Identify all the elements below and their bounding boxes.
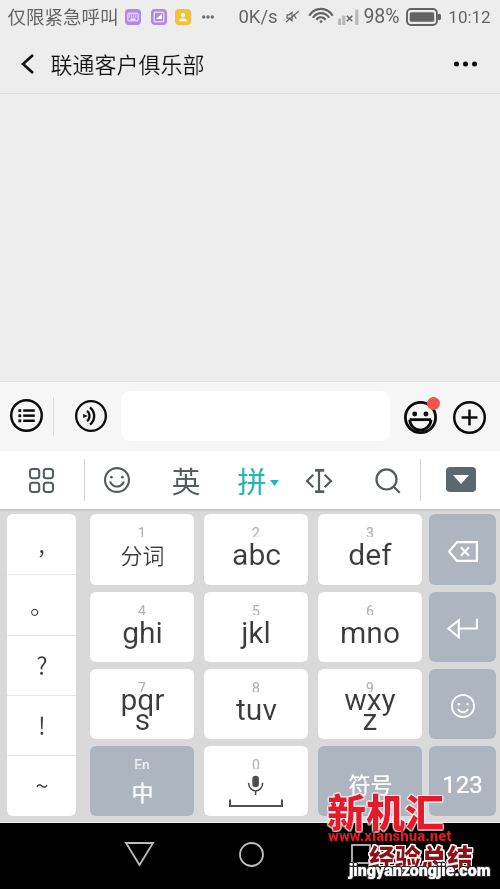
staticText: 拼 <box>237 459 267 501</box>
button[interactable]: 8 <box>204 669 308 739</box>
button[interactable]: En <box>90 746 194 816</box>
staticText: jingyanzongjie.com <box>350 860 492 879</box>
button[interactable]: Emoji <box>429 669 496 739</box>
staticText: jingyanzongjie.com <box>350 862 492 881</box>
staticText: wxy z <box>344 682 396 737</box>
staticText: 经验总结 <box>368 837 473 875</box>
button[interactable]: More options <box>430 33 500 94</box>
button[interactable]: Emoji <box>404 401 437 434</box>
button[interactable]: 2 <box>204 514 308 585</box>
button[interactable]: 0 <box>204 746 308 816</box>
staticText: En <box>134 757 150 769</box>
button[interactable]: 7 <box>90 669 194 739</box>
button[interactable]: , <box>7 514 76 575</box>
button[interactable]: Back <box>6 33 50 94</box>
staticText: , <box>38 525 45 560</box>
button[interactable]: 6 <box>318 592 422 662</box>
button[interactable]: 3 <box>318 514 422 585</box>
staticText: 仅限紧急呼叫 <box>7 3 119 30</box>
staticText: jingyanzongjie.com <box>350 861 492 880</box>
button[interactable]: Home <box>216 823 286 885</box>
staticText: 5 <box>252 603 260 615</box>
button[interactable]: 符号 <box>318 746 422 816</box>
button[interactable]: ! <box>7 696 76 756</box>
button[interactable]: Keyboard layouts <box>29 468 54 493</box>
staticText: 4 <box>138 603 146 615</box>
staticText: tuv <box>236 692 277 727</box>
button[interactable]: 拼 <box>237 451 279 509</box>
button[interactable]: Voice <box>75 400 107 432</box>
button[interactable]: 。 <box>7 575 76 636</box>
staticText: 经验总结 <box>369 837 474 875</box>
button[interactable]: ~ <box>7 756 76 816</box>
button[interactable]: Emoji <box>104 467 130 493</box>
staticText: 经验总结 <box>370 837 475 875</box>
staticText: 新机汇 <box>326 783 444 839</box>
staticText: 经验总结 <box>368 839 473 877</box>
staticText: 经验总结 <box>370 838 475 876</box>
staticText: jingyanzongjie.com <box>349 862 491 881</box>
staticText: pqr s <box>120 682 165 737</box>
button[interactable]: 4 <box>90 592 194 662</box>
staticText: 。 <box>30 586 54 621</box>
staticText: ? <box>36 647 48 682</box>
staticText: 经验总结 <box>370 839 475 877</box>
staticText: ghi <box>122 615 163 650</box>
staticText: 2 <box>252 525 260 537</box>
staticText: 经验总结 <box>369 839 474 877</box>
staticText: 新机汇 <box>328 781 446 837</box>
staticText: ! <box>38 707 46 742</box>
staticText: www.xianshua.net <box>328 827 452 845</box>
staticText: 8 <box>252 680 260 692</box>
staticText: 符号 <box>348 767 393 799</box>
staticText: jingyanzongjie.com <box>349 861 491 880</box>
staticText: 3 <box>366 525 374 537</box>
button[interactable]: 5 <box>204 592 308 662</box>
button[interactable]: 123 <box>429 746 496 816</box>
staticText: 新机汇 <box>328 783 446 839</box>
staticText: 新机汇 <box>327 783 445 839</box>
staticText: 新机汇 <box>327 781 445 837</box>
button[interactable]: Search <box>374 467 400 493</box>
staticText: jingyanzongjie.com <box>349 860 491 879</box>
staticText: jkl <box>241 615 271 650</box>
staticText: 9 <box>366 680 374 692</box>
button[interactable]: ? <box>7 636 76 696</box>
staticText: 0 <box>252 757 260 769</box>
staticText: def <box>348 537 392 572</box>
button[interactable]: 英 <box>166 451 206 509</box>
button[interactable]: Backspace <box>429 514 496 585</box>
button[interactable]: Back <box>104 823 174 885</box>
staticText: mno <box>340 615 400 650</box>
staticText: 10:12 <box>448 7 491 27</box>
staticText: jingyanzongjie.com <box>348 861 490 880</box>
staticText: 新机汇 <box>326 781 444 837</box>
staticText: 新机汇 <box>328 782 446 838</box>
staticText: 分词 <box>120 538 165 570</box>
button[interactable]: 1 <box>90 514 194 585</box>
staticText: abc <box>232 537 281 572</box>
staticText: 经验总结 <box>369 838 474 876</box>
staticText: 新机汇 <box>326 782 444 838</box>
button[interactable]: Recents <box>326 823 396 885</box>
staticText: 新机汇 <box>327 782 445 838</box>
staticText: jingyanzongjie.com <box>348 860 490 879</box>
staticText: jingyanzongjie.com <box>348 862 490 881</box>
staticText: 98% <box>363 5 400 28</box>
button[interactable]: Move cursor <box>306 468 332 494</box>
button[interactable]: Menu <box>10 399 43 432</box>
staticText: 英 <box>171 459 201 501</box>
staticText: 7 <box>138 680 146 692</box>
staticText: 1 <box>138 525 146 537</box>
staticText: 联通客户俱乐部 <box>50 47 205 79</box>
button[interactable]: 9 <box>318 669 422 739</box>
staticText: 0K/s <box>238 6 278 28</box>
staticText: ~ <box>35 767 49 802</box>
button[interactable]: Hide keyboard <box>446 467 476 492</box>
staticText: 经验总结 <box>368 838 473 876</box>
button[interactable]: Enter <box>429 592 496 662</box>
button[interactable]: More <box>453 401 486 434</box>
staticText: 中 <box>131 775 154 807</box>
staticText: 123 <box>442 771 483 799</box>
